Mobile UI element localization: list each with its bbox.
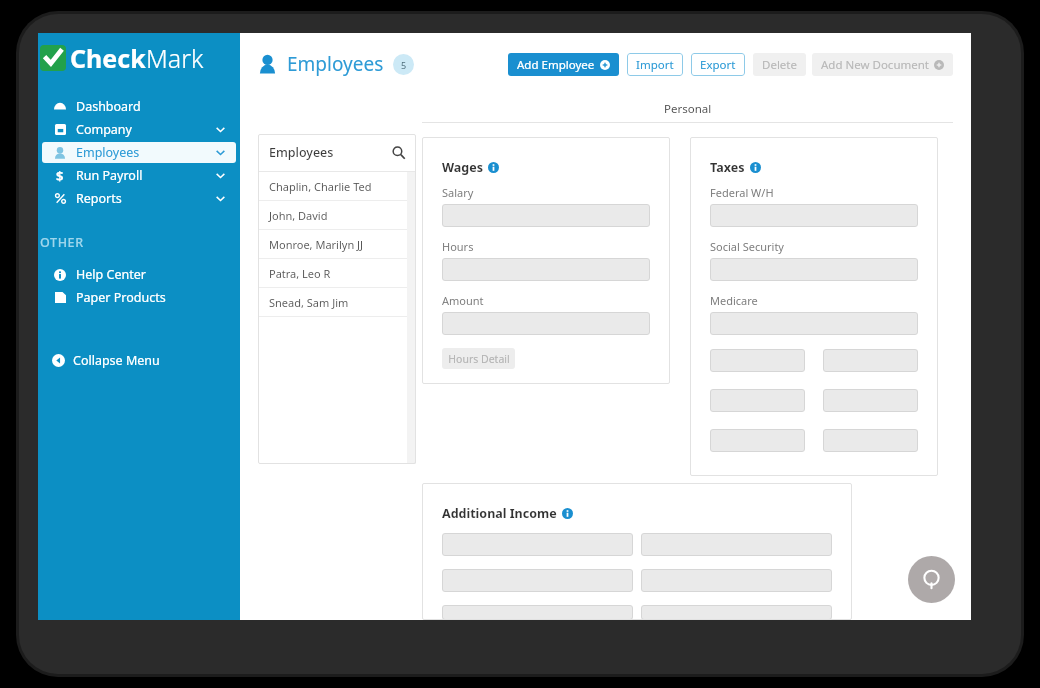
staticText: Run Payroll	[76, 167, 143, 184]
button[interactable]: Employees	[42, 142, 236, 163]
button[interactable]: Dashboard	[42, 96, 236, 117]
other: Info about Wages	[488, 162, 499, 173]
button[interactable]: Delete	[753, 53, 806, 76]
other: Info about Taxes	[750, 162, 761, 173]
button[interactable]	[823, 429, 918, 452]
button[interactable]: Employees	[258, 51, 414, 77]
staticText: $	[56, 167, 64, 185]
button[interactable]	[710, 204, 918, 227]
button[interactable]: Paper Products	[42, 287, 236, 308]
button[interactable]: Add Employee	[508, 53, 619, 76]
button[interactable]: Patra, Leo R	[258, 259, 407, 287]
button[interactable]	[442, 258, 650, 281]
staticText: Additional Income	[442, 505, 557, 522]
staticText: Snead, Sam Jim	[269, 295, 349, 310]
staticText: Personal	[664, 101, 712, 117]
staticText: Taxes	[710, 159, 745, 176]
staticText: 5	[401, 59, 407, 71]
staticText: Delete	[762, 57, 797, 73]
staticText: Amount	[442, 293, 484, 308]
staticText: Chaplin, Charlie Ted	[269, 179, 372, 194]
button[interactable]	[442, 533, 633, 556]
button[interactable]: Import	[627, 53, 683, 76]
button[interactable]	[710, 258, 918, 281]
button[interactable]	[442, 605, 633, 620]
button[interactable]: Reports	[42, 188, 236, 209]
staticText: Import	[636, 57, 674, 73]
staticText: Employees	[269, 144, 334, 161]
staticText: Federal W/H	[710, 185, 774, 200]
staticText: Export	[700, 57, 736, 73]
button[interactable]: John, David	[258, 201, 407, 229]
button[interactable]	[641, 569, 832, 592]
button[interactable]: Check	[40, 41, 204, 75]
button[interactable]	[641, 533, 832, 556]
button[interactable]	[442, 569, 633, 592]
button[interactable]: Export	[691, 53, 745, 76]
staticText: Wages	[442, 159, 483, 176]
staticText: Hours Detail	[448, 352, 510, 366]
staticText: John, David	[269, 208, 328, 223]
staticText: Add Employee	[517, 57, 595, 73]
button[interactable]: Personal	[422, 101, 953, 122]
staticText: Company	[76, 121, 132, 138]
button[interactable]	[823, 389, 918, 412]
button[interactable]: Employees	[258, 134, 416, 171]
button[interactable]: Add New Document	[812, 53, 953, 76]
button[interactable]: Chaplin, Charlie Ted	[258, 172, 407, 200]
button[interactable]: Company	[42, 119, 236, 140]
staticText: OTHER	[40, 234, 84, 251]
button[interactable]: Hours Detail	[442, 348, 515, 369]
staticText: Medicare	[710, 293, 758, 308]
staticText: Employees	[287, 51, 384, 77]
other: Info about Additional Income	[562, 508, 573, 519]
staticText: Mark	[146, 41, 204, 75]
button[interactable]	[710, 312, 918, 335]
staticText: Patra, Leo R	[269, 266, 331, 281]
button[interactable]: Collapse Menu	[38, 345, 240, 375]
staticText: Paper Products	[76, 289, 166, 306]
staticText: Dashboard	[76, 98, 141, 115]
button[interactable]	[823, 349, 918, 372]
staticText: Check	[70, 41, 146, 75]
staticText: Employees	[76, 144, 140, 161]
staticText: Collapse Menu	[73, 352, 160, 369]
button[interactable]: Monroe, Marilyn JJ	[258, 230, 407, 258]
staticText: Reports	[76, 190, 122, 207]
other: Search	[392, 146, 405, 159]
staticText: Hours	[442, 239, 474, 254]
button[interactable]: Snead, Sam Jim	[258, 288, 407, 316]
staticText: Add New Document	[821, 57, 929, 73]
button[interactable]	[710, 389, 805, 412]
button[interactable]: Help Center	[42, 264, 236, 285]
staticText: Social Security	[710, 239, 784, 254]
button[interactable]: Open chat	[908, 556, 955, 603]
button[interactable]	[442, 312, 650, 335]
button[interactable]	[641, 605, 832, 620]
staticText: Monroe, Marilyn JJ	[269, 237, 364, 252]
button[interactable]: $	[42, 165, 236, 186]
button[interactable]	[710, 429, 805, 452]
staticText: Help Center	[76, 266, 146, 283]
button[interactable]	[710, 349, 805, 372]
button[interactable]	[442, 204, 650, 227]
staticText: Salary	[442, 185, 474, 200]
